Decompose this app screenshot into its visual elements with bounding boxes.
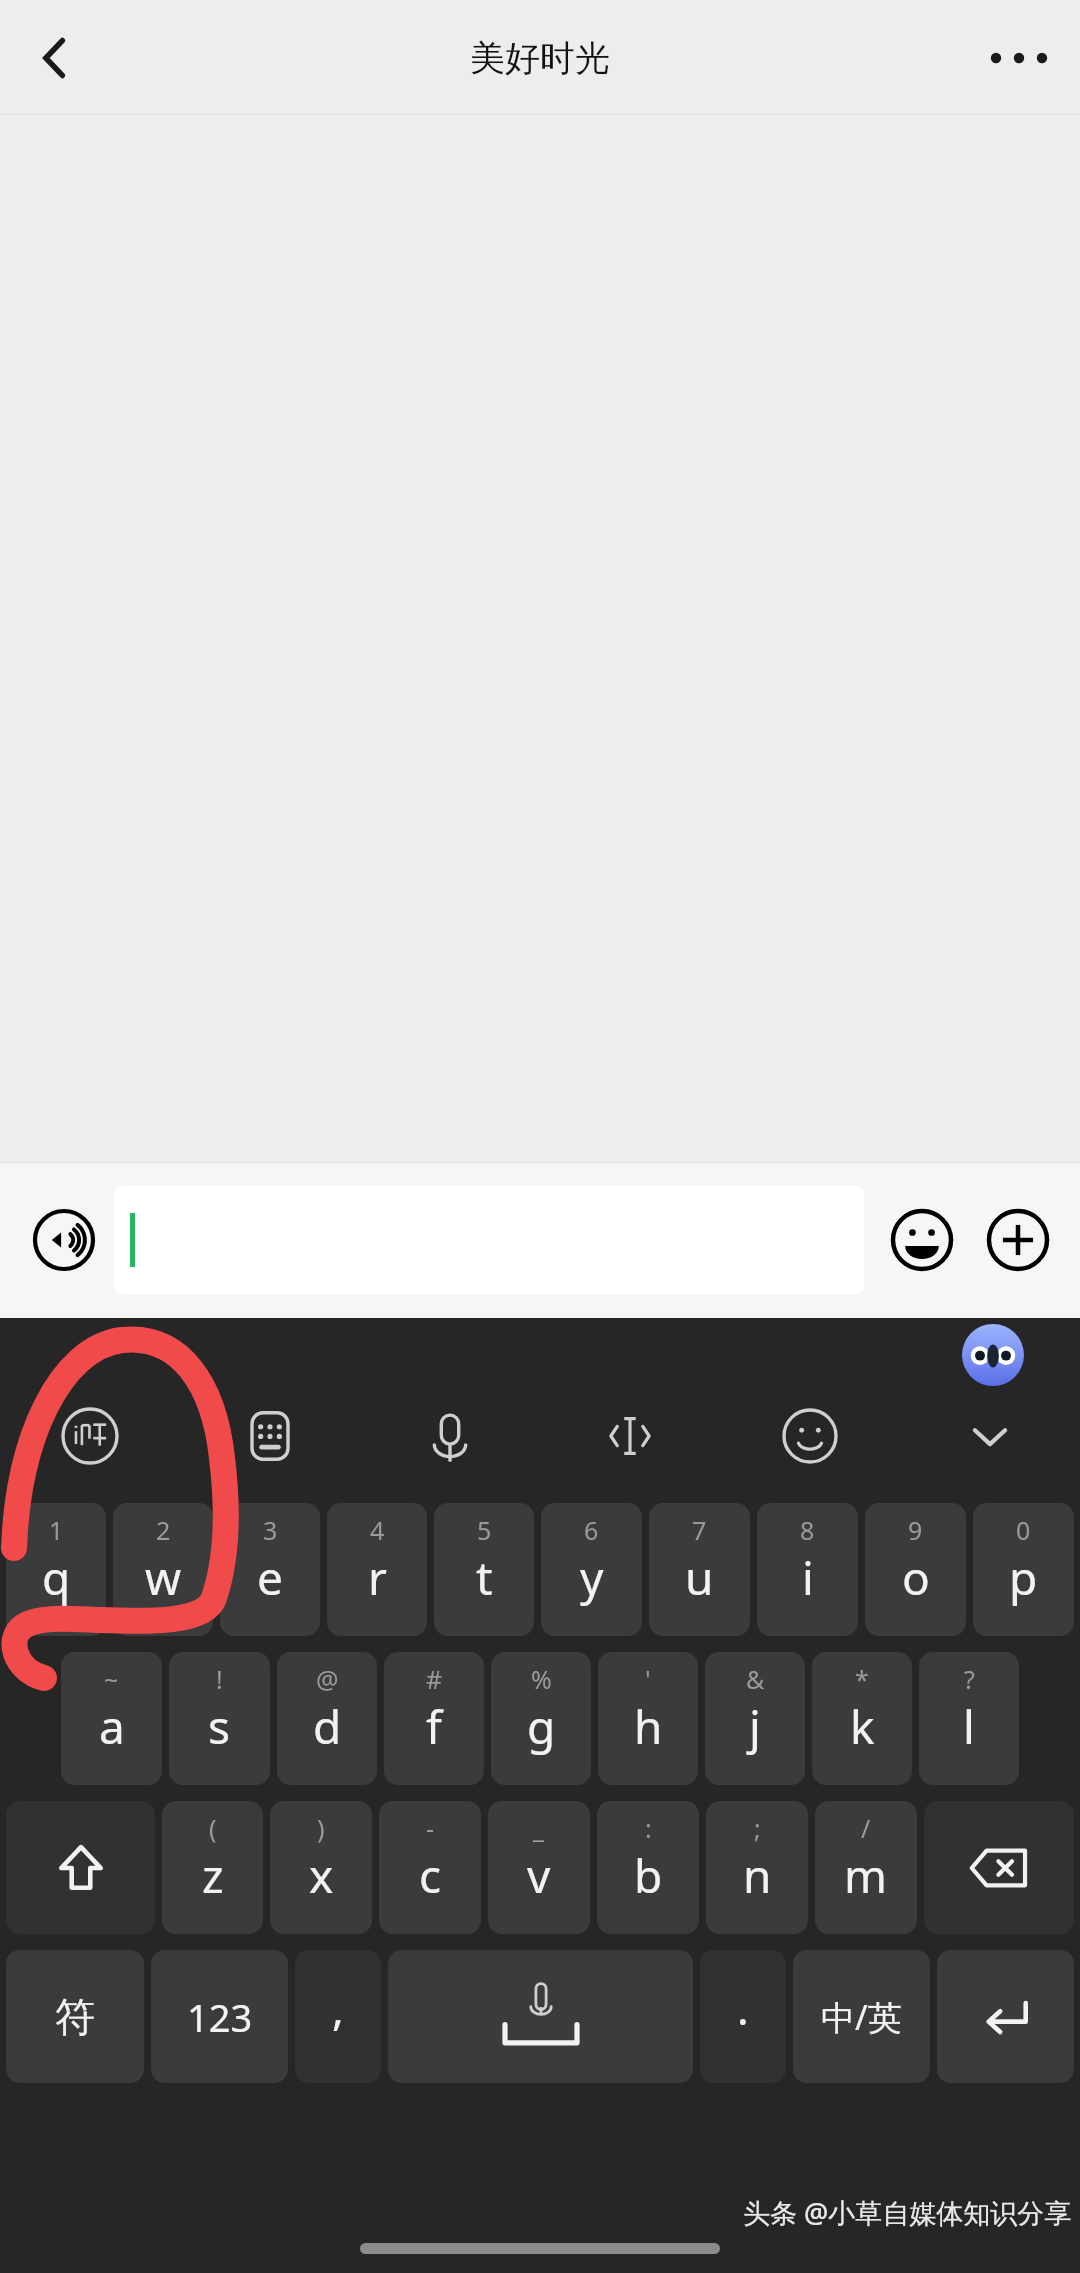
button[interactable]: Input method logo xyxy=(0,1378,180,1493)
staticText: * xyxy=(855,1662,869,1696)
staticText: , xyxy=(332,1978,344,2038)
other: Space xyxy=(481,1979,601,2055)
staticText: ! xyxy=(216,1662,223,1696)
staticText: 头条 @小草自媒体知识分享 xyxy=(743,2194,1072,2231)
button[interactable]: 1 xyxy=(6,1503,106,1636)
button[interactable]: Assistant mascot xyxy=(962,1324,1024,1386)
staticText: 3 xyxy=(263,1513,278,1547)
staticText: x xyxy=(309,1844,334,1907)
staticText: j xyxy=(749,1695,761,1758)
staticText: 9 xyxy=(908,1513,923,1547)
button[interactable]: 符 xyxy=(6,1950,144,2083)
staticText: f xyxy=(426,1695,442,1758)
staticText: @ xyxy=(316,1662,339,1696)
other: Enter xyxy=(977,1988,1035,2046)
staticText: o xyxy=(902,1546,930,1609)
button[interactable]: - xyxy=(379,1801,481,1934)
button[interactable]: 6 xyxy=(541,1503,642,1636)
staticText: 美好时光 xyxy=(470,36,610,80)
staticText: e xyxy=(257,1546,283,1609)
staticText: 8 xyxy=(800,1513,815,1547)
button[interactable]: ( xyxy=(162,1801,263,1934)
staticText: w xyxy=(145,1546,182,1609)
staticText: ' xyxy=(645,1662,651,1696)
staticText: g xyxy=(527,1695,556,1758)
button[interactable]: ? xyxy=(919,1652,1019,1785)
staticText: 7 xyxy=(692,1513,707,1547)
staticText: v xyxy=(527,1844,551,1907)
staticText: b xyxy=(634,1844,663,1907)
staticText: z xyxy=(202,1844,224,1907)
staticText: k xyxy=(850,1695,875,1758)
button[interactable]: 2 xyxy=(113,1503,213,1636)
button[interactable]: * xyxy=(812,1652,912,1785)
staticText: ? xyxy=(964,1662,975,1696)
staticText: # xyxy=(426,1662,443,1696)
button[interactable]: Voice input xyxy=(14,1190,114,1290)
staticText: s xyxy=(208,1695,231,1758)
button[interactable] xyxy=(114,1186,864,1294)
button[interactable]: Voice input xyxy=(360,1378,540,1493)
button[interactable]: % xyxy=(491,1652,591,1785)
staticText: l xyxy=(963,1695,975,1758)
button[interactable]: 8 xyxy=(757,1503,858,1636)
staticText: 6 xyxy=(584,1513,599,1547)
staticText: / xyxy=(861,1811,871,1845)
button[interactable]: Emoji xyxy=(874,1192,970,1288)
button[interactable]: & xyxy=(705,1652,805,1785)
button[interactable]: Hide keyboard xyxy=(900,1378,1080,1493)
other: Backspace xyxy=(968,1837,1030,1899)
button[interactable]: 0 xyxy=(973,1503,1074,1636)
staticText: _ xyxy=(533,1811,545,1845)
staticText: n xyxy=(743,1844,772,1907)
staticText: - xyxy=(426,1811,435,1845)
staticText: & xyxy=(746,1662,765,1696)
staticText: 4 xyxy=(370,1513,385,1547)
staticText: c xyxy=(419,1844,442,1907)
button[interactable]: / xyxy=(815,1801,917,1934)
staticText: : xyxy=(645,1811,652,1845)
staticText: 123 xyxy=(187,1991,253,2043)
button[interactable]: . xyxy=(700,1950,786,2083)
button[interactable]: ; xyxy=(706,1801,808,1934)
button[interactable]: ! xyxy=(169,1652,270,1785)
button[interactable]: _ xyxy=(488,1801,590,1934)
button[interactable]: Shift xyxy=(6,1801,155,1934)
button[interactable]: ' xyxy=(598,1652,698,1785)
button[interactable]: Emoji xyxy=(720,1378,900,1493)
button[interactable]: More options xyxy=(976,15,1062,101)
button[interactable]: , xyxy=(295,1950,381,2083)
button[interactable]: ~ xyxy=(61,1652,162,1785)
staticText: a xyxy=(99,1695,125,1758)
button[interactable]: 3 xyxy=(220,1503,320,1636)
button[interactable]: Keyboard layout xyxy=(180,1378,360,1493)
button[interactable]: More functions xyxy=(970,1192,1066,1288)
staticText: 5 xyxy=(477,1513,492,1547)
button[interactable]: @ xyxy=(277,1652,377,1785)
button[interactable]: 5 xyxy=(434,1503,534,1636)
button[interactable]: 7 xyxy=(649,1503,750,1636)
staticText: ) xyxy=(317,1811,325,1845)
button[interactable]: Space xyxy=(388,1950,693,2083)
staticText: % xyxy=(531,1662,552,1696)
staticText: d xyxy=(313,1695,342,1758)
staticText: r xyxy=(368,1546,387,1609)
staticText: ~ xyxy=(104,1662,119,1696)
button[interactable]: Back xyxy=(12,15,98,101)
button[interactable]: Backspace xyxy=(924,1801,1074,1934)
button[interactable]: ) xyxy=(270,1801,372,1934)
staticText: 中/英 xyxy=(821,1994,902,2040)
button[interactable]: 123 xyxy=(151,1950,288,2083)
button[interactable]: Text editing xyxy=(540,1378,720,1493)
staticText: u xyxy=(685,1546,714,1609)
button[interactable]: : xyxy=(597,1801,699,1934)
button[interactable]: 4 xyxy=(327,1503,427,1636)
button[interactable]: # xyxy=(384,1652,484,1785)
staticText: m xyxy=(844,1844,888,1907)
button[interactable]: 中/英 xyxy=(793,1950,930,2083)
button[interactable]: Enter xyxy=(937,1950,1074,2083)
staticText: i xyxy=(802,1546,814,1609)
staticText: ; xyxy=(754,1811,761,1845)
button[interactable]: 9 xyxy=(865,1503,966,1636)
staticText: ( xyxy=(209,1811,217,1845)
